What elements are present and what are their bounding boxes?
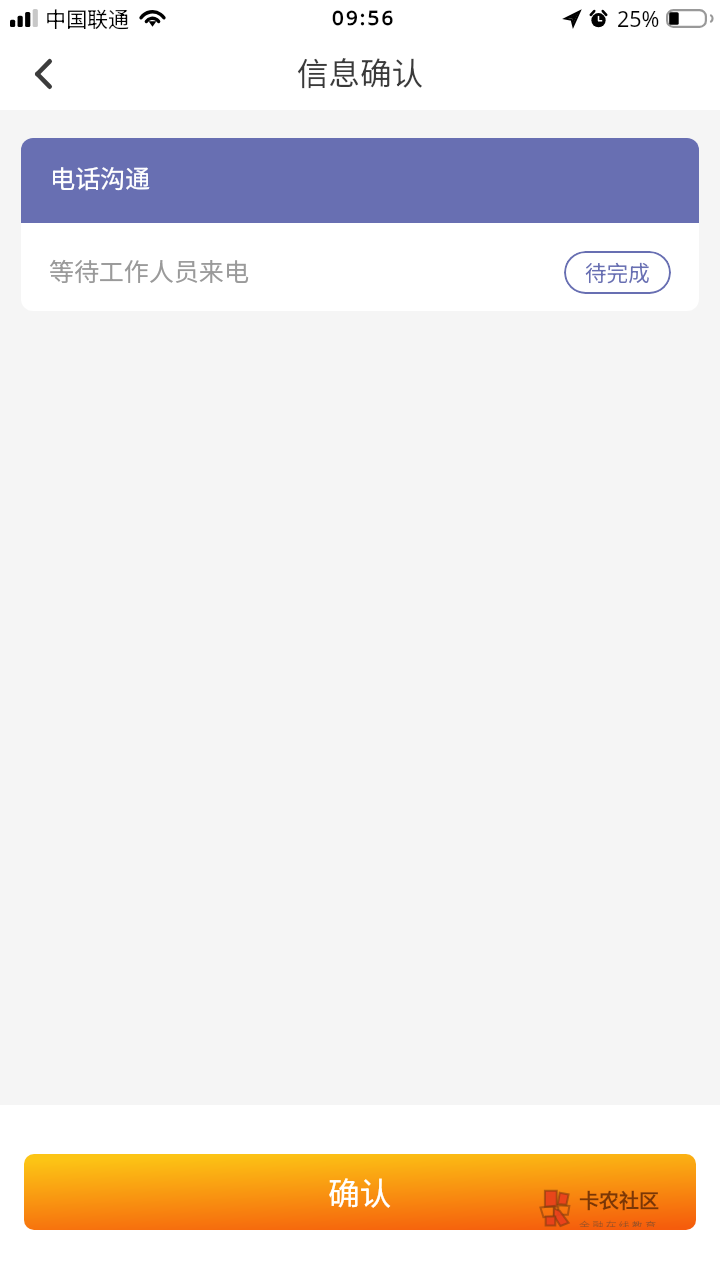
staticText: 中国联通	[45, 3, 129, 33]
button[interactable]: 待完成	[564, 251, 671, 294]
staticText: 卡农社区	[579, 1185, 659, 1214]
staticText: 等待工作人员来电	[49, 252, 250, 288]
button[interactable]: 确认	[24, 1154, 696, 1230]
staticText: 金融在线教育	[579, 1217, 659, 1227]
button[interactable]: 等待工作人员来电	[21, 223, 699, 311]
button[interactable]: Back	[12, 44, 74, 106]
staticText: 确认	[328, 1168, 392, 1214]
staticText: 电话沟通	[50, 159, 151, 195]
staticText: 信息确认	[297, 48, 424, 94]
staticText: 待完成	[585, 256, 650, 287]
staticText: 25%	[617, 4, 660, 33]
staticText: 09:56	[332, 3, 396, 31]
